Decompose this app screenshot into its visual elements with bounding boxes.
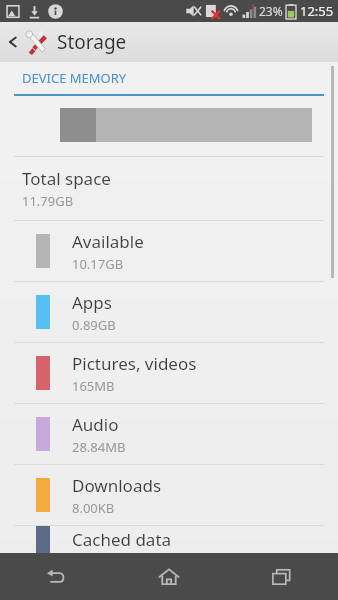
other: Back bbox=[6, 35, 20, 49]
button[interactable]: Pictures, videos bbox=[0, 343, 338, 403]
staticText: 12:55 bbox=[300, 2, 334, 20]
staticText: Apps bbox=[72, 291, 112, 314]
staticText: Available bbox=[72, 230, 144, 253]
button[interactable]: Available bbox=[0, 221, 338, 281]
staticText: 28.84MB bbox=[72, 438, 126, 456]
staticText: Total space bbox=[22, 167, 111, 190]
staticText: Audio bbox=[72, 413, 119, 436]
button[interactable]: DEVICE MEMORY bbox=[22, 69, 127, 87]
staticText: 11.79GB bbox=[22, 192, 74, 210]
button[interactable]: Downloads bbox=[0, 465, 338, 525]
staticText: Pictures, videos bbox=[72, 352, 197, 375]
button[interactable]: Apps bbox=[0, 282, 338, 342]
staticText: Downloads bbox=[72, 474, 162, 497]
staticText: 23% bbox=[259, 3, 283, 19]
staticText: 8.00KB bbox=[72, 499, 115, 517]
button[interactable]: Total space bbox=[0, 157, 338, 220]
staticText: 165MB bbox=[72, 377, 115, 395]
button[interactable]: Back bbox=[0, 22, 338, 62]
other: Settings bbox=[23, 29, 49, 55]
button[interactable]: Audio bbox=[0, 404, 338, 464]
staticText: Cached data bbox=[72, 528, 172, 551]
button[interactable]: Recent apps bbox=[225, 553, 338, 600]
button[interactable]: Back bbox=[0, 553, 112, 600]
staticText: Storage bbox=[57, 29, 127, 55]
button[interactable]: Home bbox=[112, 553, 225, 600]
button[interactable]: Cached data bbox=[0, 526, 338, 553]
staticText: 10.17GB bbox=[72, 255, 124, 273]
staticText: 0.89GB bbox=[72, 316, 116, 334]
